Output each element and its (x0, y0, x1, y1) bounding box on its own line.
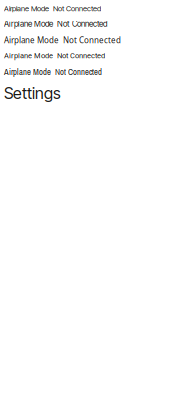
staticText: Airplane Mode Not Connected (4, 19, 107, 29)
staticText: Airplane Mode Not Connected (4, 66, 102, 78)
staticText: Airplane Mode Not Connected (4, 35, 121, 45)
staticText: Airplane Mode Not Connected (4, 4, 101, 13)
staticText: Settings (4, 84, 61, 103)
staticText: Airplane Mode Not Connected (4, 51, 105, 60)
